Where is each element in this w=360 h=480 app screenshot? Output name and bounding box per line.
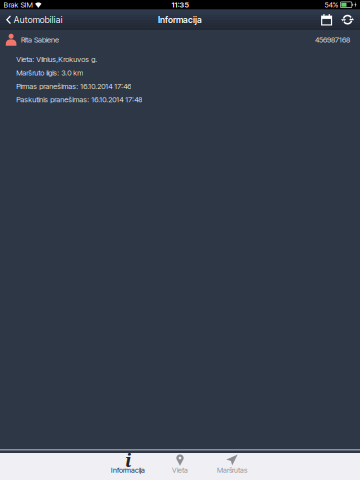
staticText: 54% — [324, 0, 338, 9]
button[interactable]: i — [102, 452, 154, 475]
staticText: Vieta — [172, 466, 188, 474]
staticText: Rita Sabiene — [21, 35, 59, 44]
button[interactable]: Automobiliai — [1, 9, 67, 30]
staticText: Pirmas pranešimas: 16.10.2014 17:46 — [16, 82, 131, 91]
button[interactable]: Calendar — [317, 9, 337, 30]
staticText: Automobiliai — [14, 14, 63, 25]
staticText: 11:35 — [171, 0, 188, 9]
button[interactable]: Refresh — [337, 9, 358, 30]
staticText: Maršrutas — [217, 466, 247, 474]
staticText: Informacija — [158, 14, 202, 25]
button[interactable]: Vieta — [154, 452, 206, 475]
staticText: Vieta: Vilnius,Krokuvos g. — [16, 55, 97, 64]
staticText: Brak SIM — [3, 0, 32, 9]
staticText: Maršruto ilgis: 3.0 km — [16, 68, 83, 77]
staticText: i — [125, 448, 131, 472]
button[interactable]: Maršrutas — [206, 452, 258, 475]
staticText: Paskutinis pranešimas: 16.10.2014 17:48 — [16, 95, 142, 104]
staticText: Informacija — [111, 466, 145, 474]
staticText: 456987168 — [315, 35, 350, 44]
